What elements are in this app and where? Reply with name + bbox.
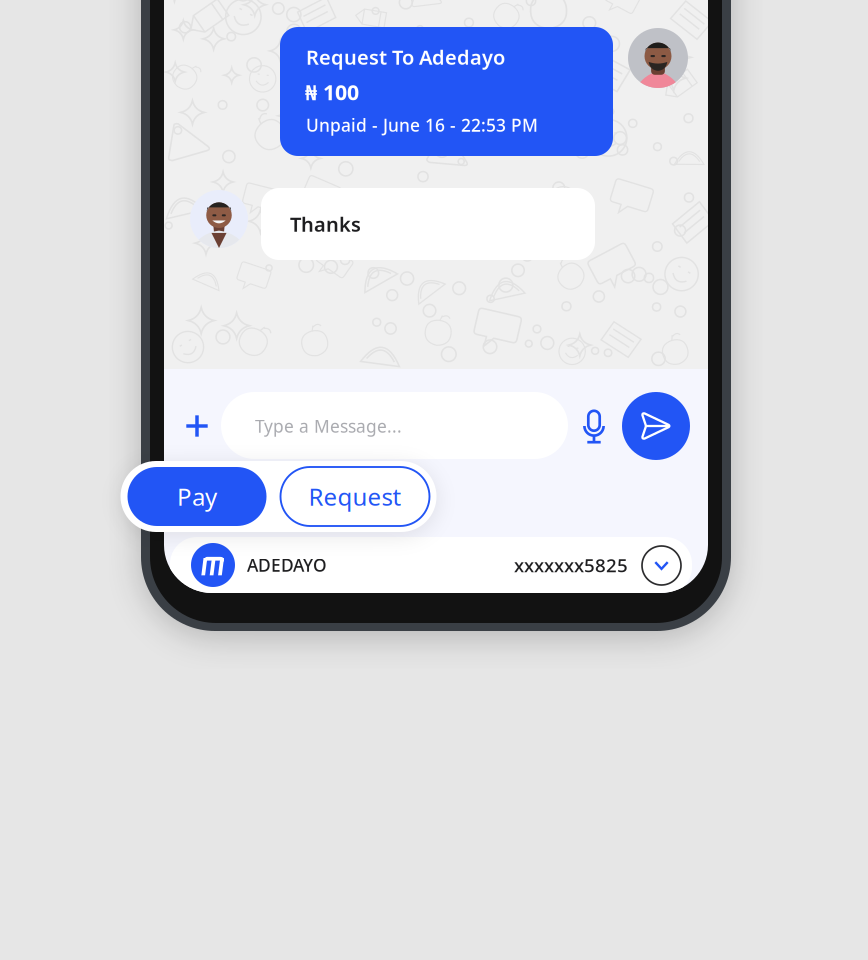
button[interactable]: Expand account details <box>642 546 681 585</box>
button[interactable]: Pay <box>127 467 266 526</box>
button[interactable]: Send <box>622 392 690 460</box>
button[interactable]: Request <box>280 467 429 526</box>
staticText: Request <box>308 481 401 512</box>
staticText: ADEDAYO <box>247 553 327 576</box>
staticText: Pay <box>177 481 217 512</box>
staticText: ₦ 100 <box>305 78 359 106</box>
button[interactable]: Record voice message <box>571 403 617 449</box>
staticText: Thanks <box>290 211 361 237</box>
staticText: Type a Message... <box>255 414 402 437</box>
staticText: Request To Adedayo <box>306 44 505 70</box>
staticText: Unpaid - June 16 - 22:53 PM <box>306 113 538 136</box>
staticText: xxxxxxx5825 <box>514 553 628 577</box>
button[interactable]: Add attachment <box>173 402 221 450</box>
